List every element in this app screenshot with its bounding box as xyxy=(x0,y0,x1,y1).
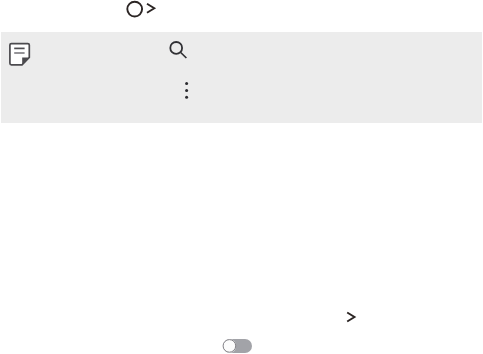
button[interactable]: Open xyxy=(343,308,361,326)
button[interactable]: Search xyxy=(166,38,190,62)
button[interactable]: Record and continue xyxy=(125,0,157,19)
button[interactable]: More options xyxy=(180,78,194,102)
button[interactable]: Notes xyxy=(8,42,31,66)
button[interactable]: Toggle setting, off xyxy=(223,339,252,353)
